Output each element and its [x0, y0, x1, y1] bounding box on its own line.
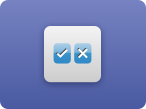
- button[interactable]: Confirm: [54, 43, 71, 63]
- button[interactable]: Cancel: [74, 43, 91, 63]
